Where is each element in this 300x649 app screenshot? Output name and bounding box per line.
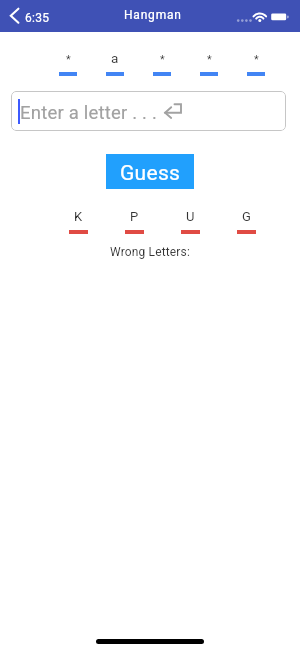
staticText: P: [130, 209, 139, 224]
staticText: a: [111, 50, 119, 66]
staticText: *: [254, 53, 259, 66]
staticText: Enter a letter . . .: [20, 102, 157, 124]
button[interactable]: Enter a letter . . .: [11, 91, 286, 131]
staticText: 6:35: [25, 11, 50, 25]
staticText: Wrong Letters:: [0, 245, 300, 259]
staticText: *: [66, 53, 71, 66]
staticText: Guess: [120, 161, 181, 186]
staticText: *: [160, 53, 165, 66]
button[interactable]: Guess: [106, 154, 194, 189]
staticText: *: [207, 53, 212, 66]
button[interactable]: Back: [1, 3, 27, 29]
staticText: Hangman: [124, 8, 182, 22]
staticText: G: [242, 209, 251, 224]
staticText: K: [74, 209, 83, 224]
staticText: U: [186, 209, 195, 224]
